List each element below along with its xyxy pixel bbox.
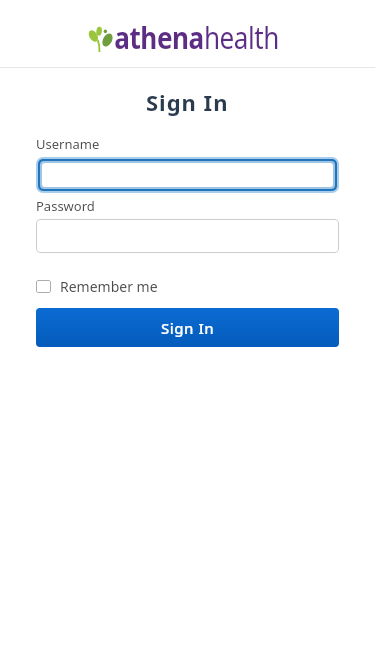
staticText: Password <box>36 197 95 215</box>
button[interactable]: Remember me <box>36 277 158 296</box>
staticText: Remember me <box>60 277 158 296</box>
staticText: health <box>204 17 280 58</box>
staticText: Sign In <box>146 87 229 117</box>
staticText: Sign In <box>161 318 215 338</box>
staticText: athena <box>114 17 204 58</box>
button[interactable]: Sign In <box>36 308 339 347</box>
staticText: Username <box>36 135 100 153</box>
button[interactable] <box>36 219 339 253</box>
